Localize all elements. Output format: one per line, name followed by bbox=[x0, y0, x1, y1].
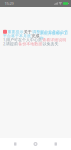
staticText: 查看详细说明 bbox=[42, 37, 66, 42]
staticText: 备份本地数据 bbox=[18, 41, 42, 46]
staticText: 完成 bbox=[31, 33, 39, 38]
staticText: 系统升级维护工作 bbox=[40, 31, 68, 41]
button[interactable]: Back bbox=[11, 139, 19, 149]
staticText: 重要提示 bbox=[7, 29, 23, 34]
button[interactable]: Camera bbox=[30, 139, 40, 149]
staticText: 以免丢失 bbox=[43, 41, 59, 46]
button[interactable]: More bbox=[52, 139, 60, 149]
staticText: 关于 bbox=[24, 29, 32, 34]
staticText: 调整部分业务的公告 bbox=[32, 29, 68, 34]
staticText: 平台将于本月底 bbox=[3, 33, 31, 38]
staticText: 1.用户可在个人中心页 bbox=[3, 37, 42, 42]
staticText: 15:29 bbox=[4, 1, 13, 6]
staticText: 2.请提前 bbox=[3, 41, 18, 46]
